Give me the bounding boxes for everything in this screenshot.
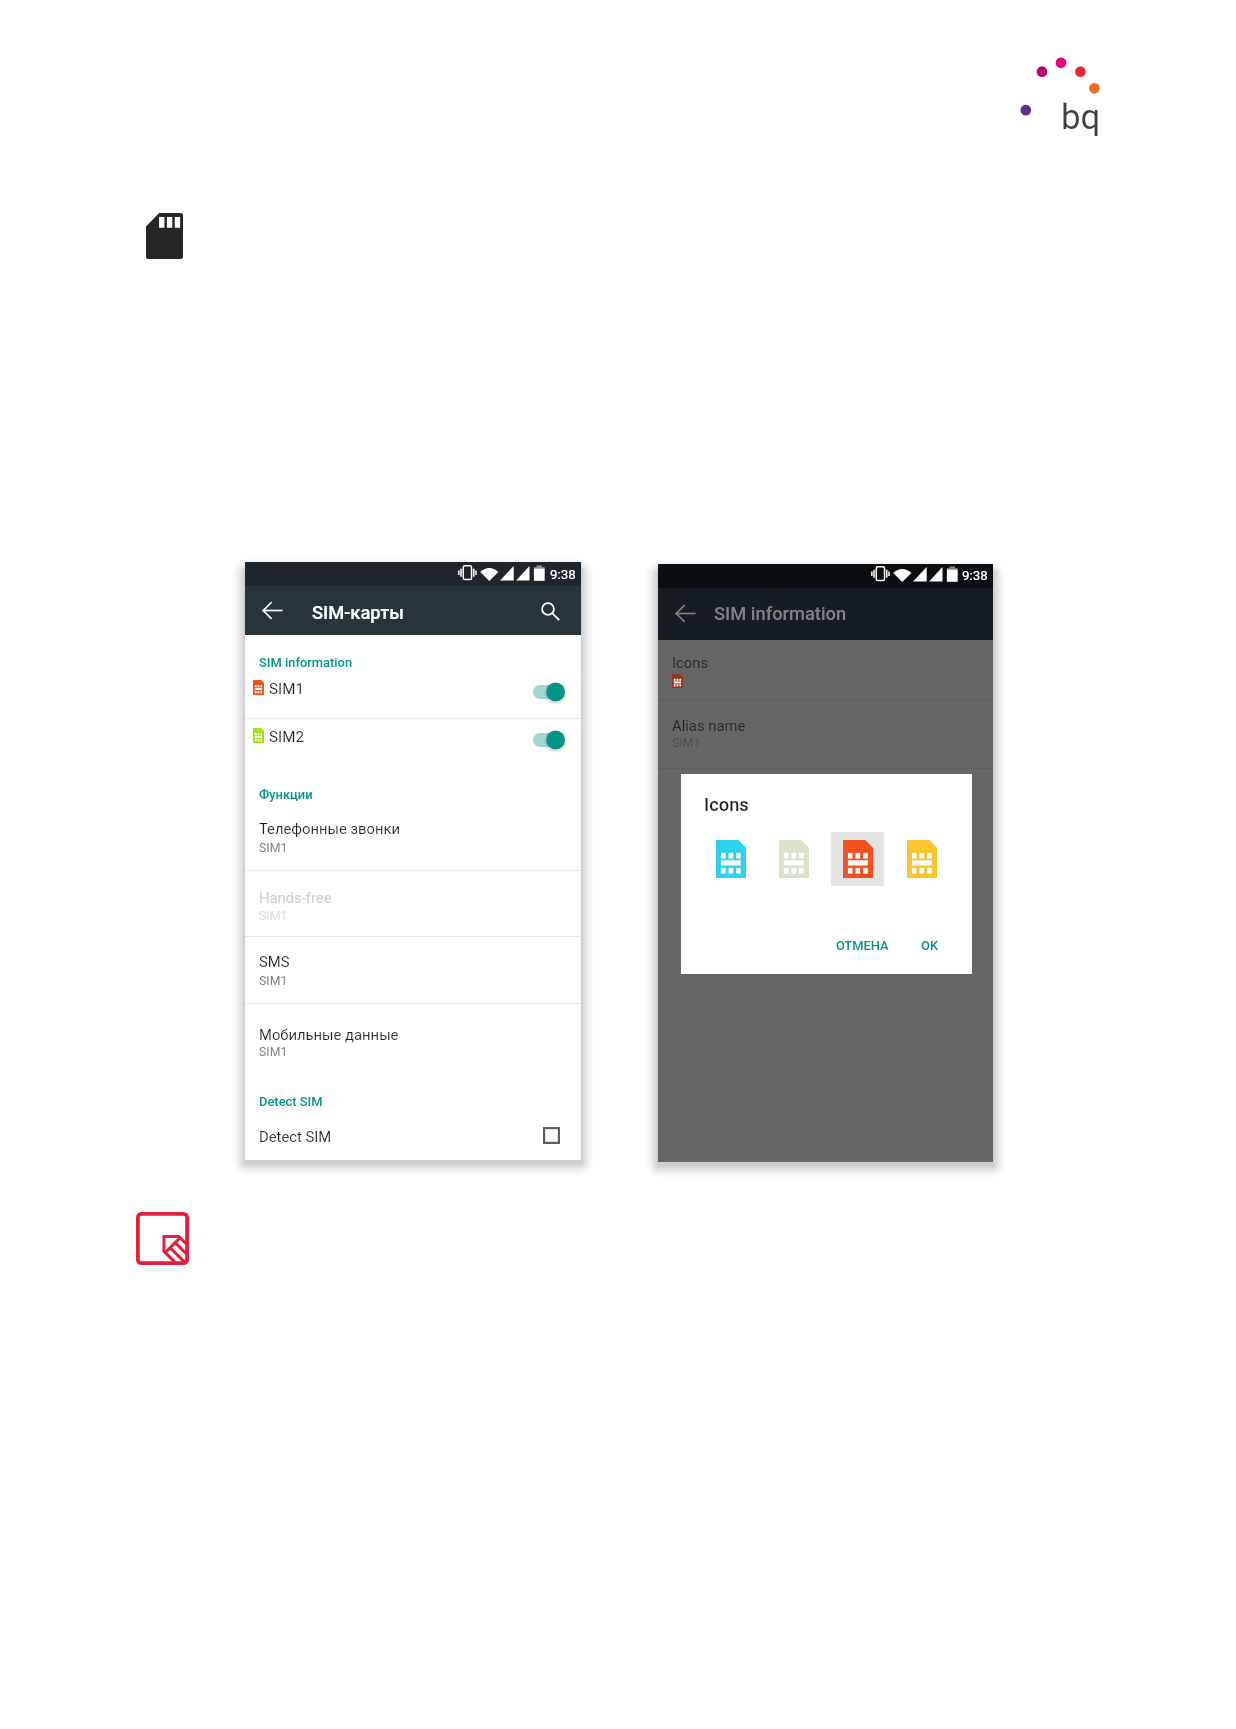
staticText: Телефонные звонки (259, 820, 401, 837)
button[interactable]: ОТМЕНА (826, 934, 899, 964)
staticText: 9:38 (962, 568, 988, 584)
button[interactable]: OK (911, 934, 948, 964)
staticText: SIM1 (259, 909, 288, 923)
button[interactable]: SMS (245, 937, 581, 1003)
staticText: Detect SIM (259, 1128, 332, 1145)
button[interactable]: Orange SIM icon, selected (831, 832, 884, 886)
staticText: SIM1 (269, 680, 304, 698)
button[interactable]: Hands-free (245, 871, 581, 936)
button[interactable]: Телефонные звонки (245, 808, 581, 870)
button[interactable]: Pale SIM icon (767, 832, 820, 886)
button[interactable]: Мобильные данные (245, 1004, 581, 1070)
button[interactable]: Cyan SIM icon (704, 832, 757, 886)
staticText: SIM information (714, 603, 847, 624)
button[interactable]: Back (256, 594, 289, 627)
staticText: Hands-free (259, 889, 332, 906)
button[interactable]: Alias name (658, 700, 993, 768)
staticText: SMS (259, 953, 290, 970)
button[interactable]: Icons (658, 640, 993, 699)
staticText: SIM-карты (312, 602, 404, 623)
button[interactable]: Back (669, 597, 702, 630)
staticText: OK (921, 938, 939, 953)
staticText: Icons (672, 654, 709, 671)
staticText: bq (1061, 97, 1101, 138)
staticText: SIM2 (269, 728, 304, 746)
staticText: Функции (259, 787, 313, 802)
button[interactable]: Detect SIM (245, 1118, 581, 1160)
staticText: SIM information (259, 655, 353, 670)
button[interactable]: SIM2 (245, 719, 581, 781)
staticText: Alias name (672, 717, 746, 734)
staticText: SIM1 (259, 1045, 288, 1059)
staticText: 9:38 (550, 567, 576, 583)
staticText: ОТМЕНА (836, 938, 889, 953)
button[interactable]: SIM1 (245, 657, 581, 718)
staticText: SIM1 (672, 736, 701, 750)
staticText: SIM1 (259, 974, 288, 988)
staticText: Detect SIM (259, 1094, 323, 1109)
staticText: SIM1 (259, 841, 288, 855)
button[interactable]: Search (533, 594, 566, 627)
button[interactable]: Yellow SIM icon (895, 832, 948, 886)
staticText: Icons (704, 794, 749, 815)
staticText: Мобильные данные (259, 1026, 399, 1043)
